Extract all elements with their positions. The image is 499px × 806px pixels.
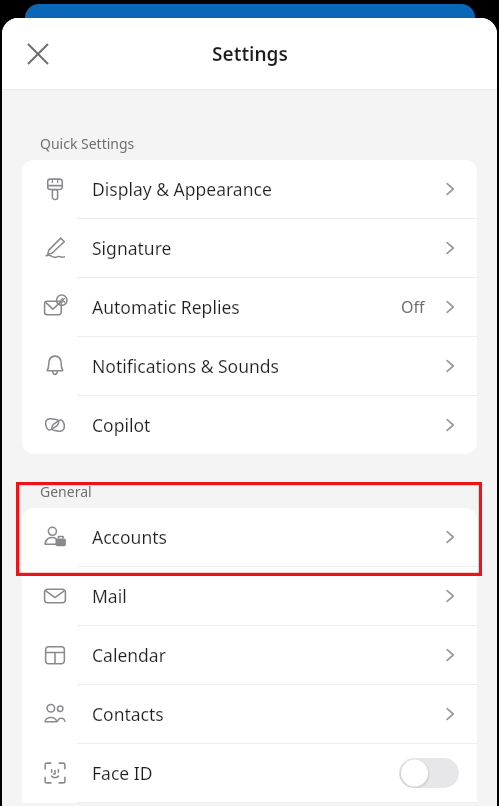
staticText: Mail (92, 584, 441, 608)
button[interactable]: Display & Appearance (22, 160, 477, 218)
button[interactable]: Close (16, 32, 60, 76)
button[interactable]: Face ID toggle (399, 758, 459, 788)
staticText: Accounts (92, 525, 441, 549)
button[interactable]: Contacts (22, 685, 477, 743)
staticText: Notifications & Sounds (92, 354, 441, 378)
button[interactable]: Notifications & Sounds (22, 337, 477, 395)
button[interactable]: Automatic Replies (22, 278, 477, 336)
button[interactable]: Copilot (22, 396, 477, 454)
staticText: Face ID (92, 761, 399, 785)
button[interactable]: Signature (22, 219, 477, 277)
staticText: Copilot (92, 413, 441, 437)
staticText: Signature (92, 236, 441, 260)
staticText: Contacts (92, 702, 441, 726)
staticText: General (40, 482, 92, 501)
button[interactable]: Calendar (22, 626, 477, 684)
staticText: Calendar (92, 643, 441, 667)
button[interactable]: Mail (22, 567, 477, 625)
staticText: Off (401, 296, 425, 318)
button[interactable]: Face ID (22, 744, 477, 802)
staticText: Automatic Replies (92, 295, 401, 319)
staticText: Quick Settings (40, 134, 135, 153)
button[interactable]: Accounts (22, 508, 477, 566)
staticText: Display & Appearance (92, 177, 441, 201)
staticText: Settings (212, 41, 288, 67)
